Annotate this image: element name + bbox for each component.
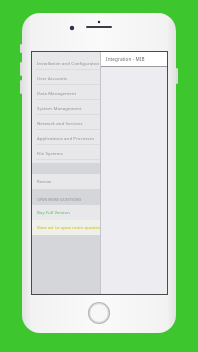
button[interactable]: File Systems — [32, 145, 100, 160]
staticText: Buy Full Version — [37, 210, 70, 216]
button[interactable]: Buy Full Version — [32, 205, 100, 220]
button[interactable]: System Management — [32, 100, 100, 115]
staticText: Review — [37, 179, 52, 185]
button[interactable]: User Accounts — [32, 70, 100, 85]
staticText: OPEN MORE QUESTIONS — [37, 197, 82, 202]
staticText: System Management — [37, 105, 82, 111]
button[interactable]: View ad. to open more questions — [32, 220, 100, 235]
staticText: Applications and Processes — [37, 135, 95, 141]
staticText: User Accounts — [37, 75, 68, 81]
staticText: Data Management — [37, 90, 77, 96]
staticText: Network and Services — [37, 120, 83, 126]
staticText: Installation and Configuration — [37, 60, 99, 66]
button[interactable]: Home — [87, 301, 111, 325]
button[interactable]: Applications and Processes — [32, 130, 100, 145]
button[interactable]: Integration - MIB — [101, 52, 167, 66]
button[interactable]: Review — [32, 174, 100, 189]
staticText: View ad. to open more questions — [37, 225, 100, 231]
staticText: Integration - MIB — [106, 56, 145, 62]
staticText: File Systems — [37, 150, 63, 156]
button[interactable]: Data Management — [32, 85, 100, 100]
button[interactable]: Installation and Configuration — [32, 55, 100, 70]
button[interactable]: Network and Services — [32, 115, 100, 130]
